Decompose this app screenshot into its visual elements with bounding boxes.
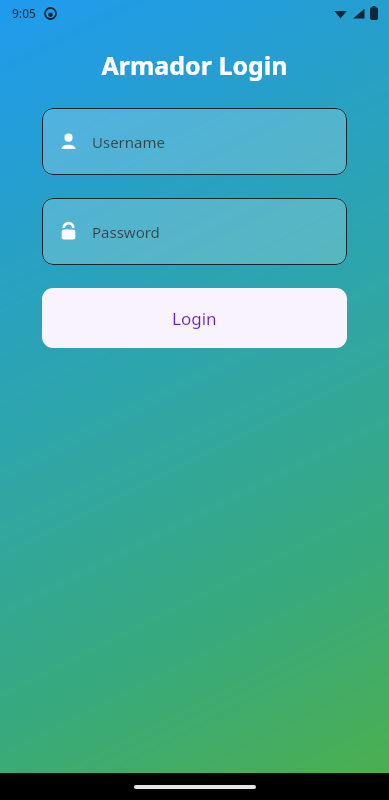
button[interactable]: Login [42,288,347,348]
button[interactable]: Password [42,198,347,265]
staticText: Login [172,307,217,330]
staticText: Password [92,222,160,242]
staticText: 9:05 [12,5,36,21]
staticText: Username [92,132,165,152]
staticText: Armador Login [0,48,389,82]
button[interactable]: Username [42,108,347,175]
